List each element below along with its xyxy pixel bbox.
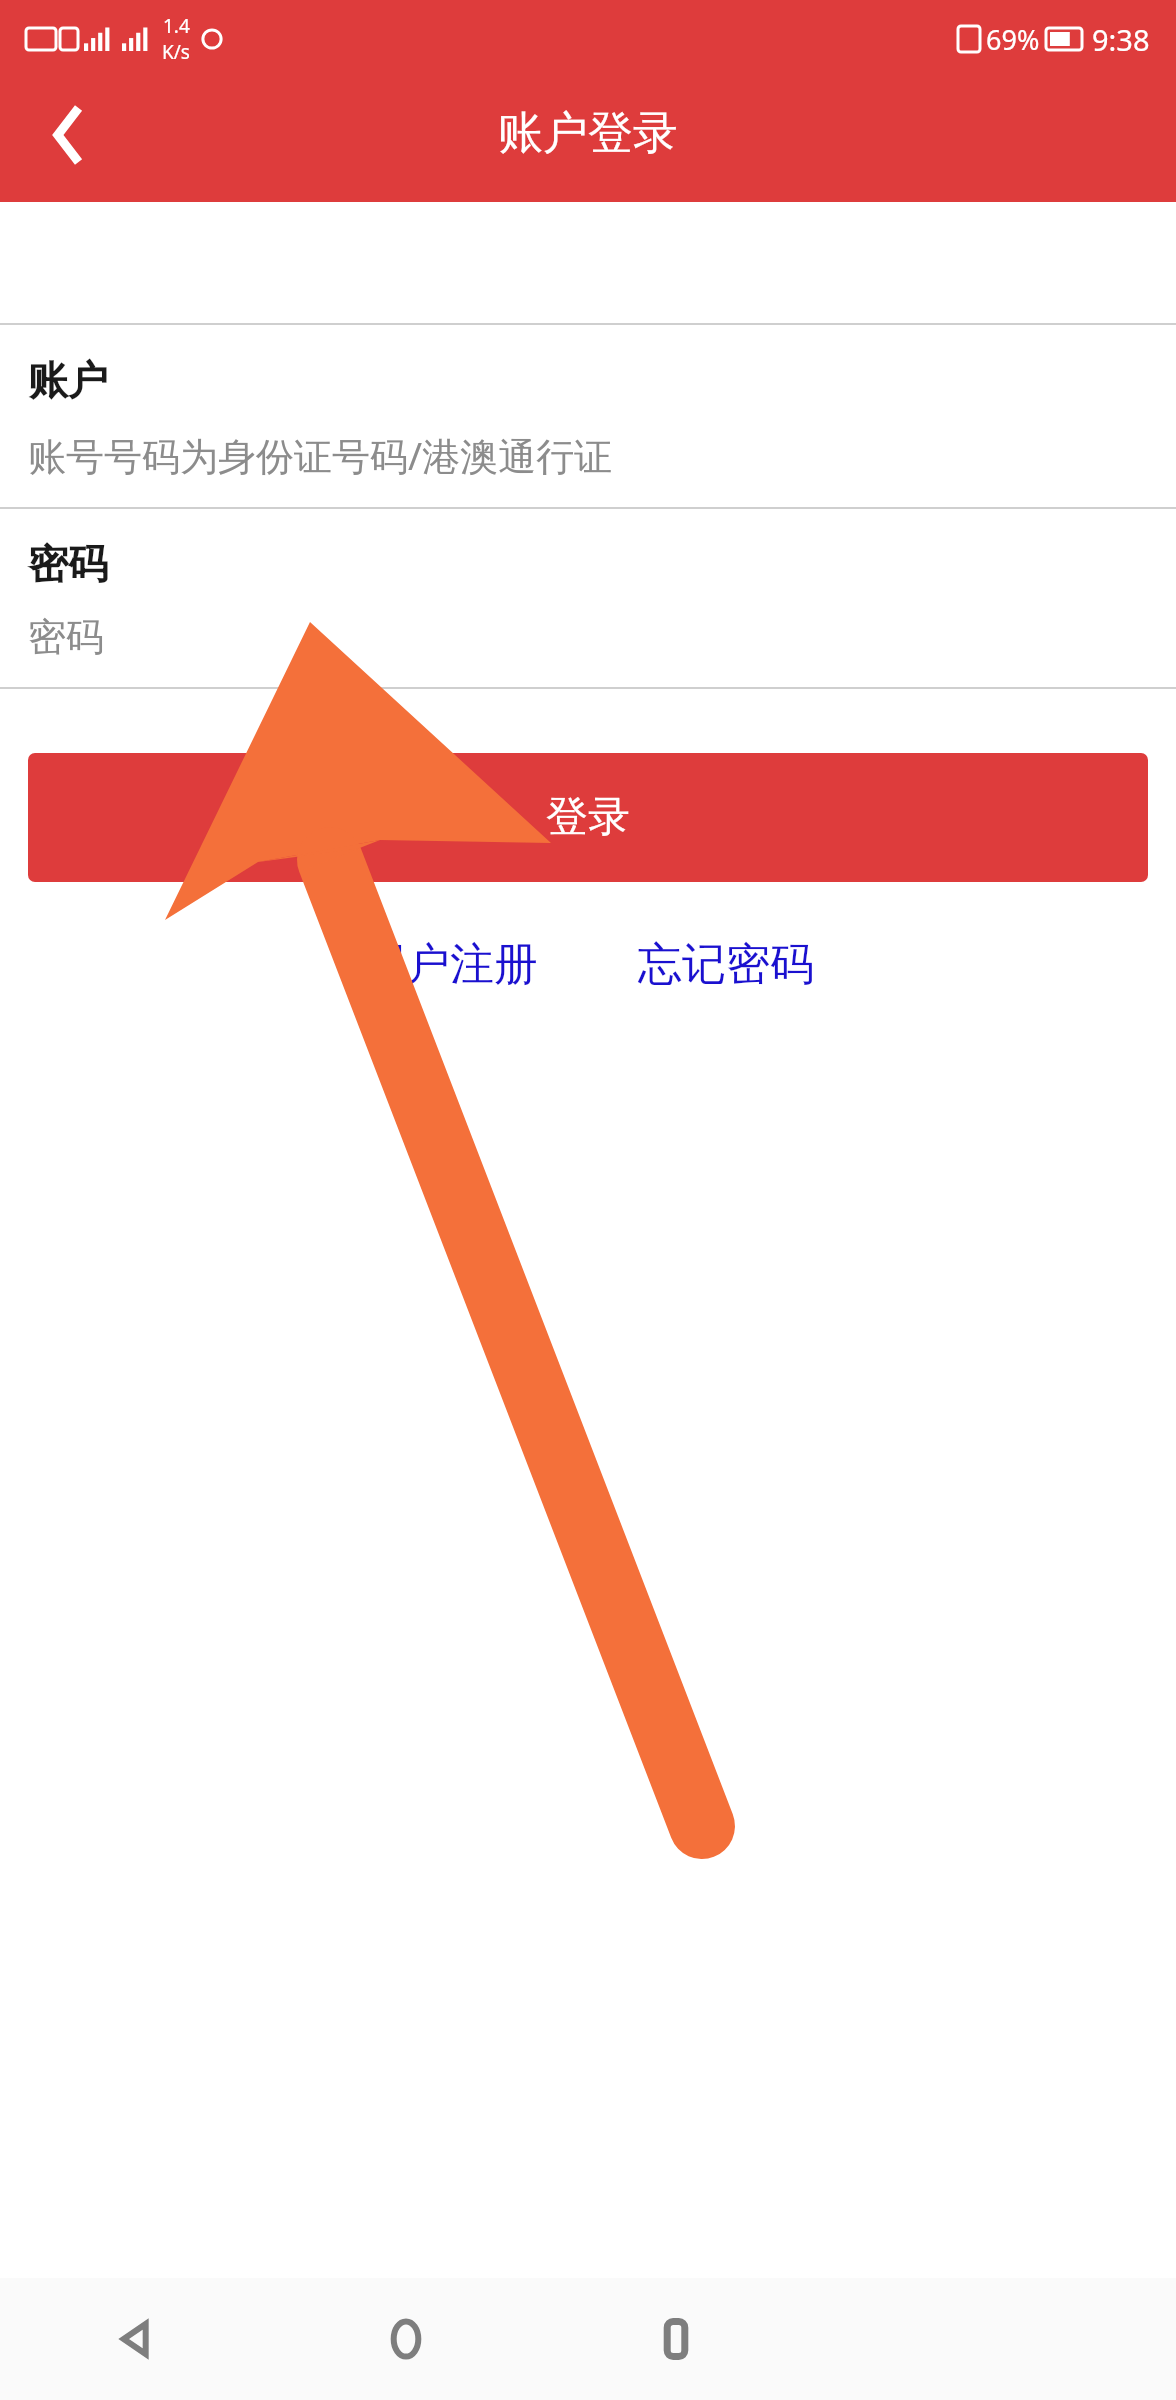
staticText: 账户登录	[498, 105, 678, 162]
button[interactable]: Recents	[541, 2278, 811, 2400]
button[interactable]: 用户注册	[356, 937, 544, 992]
button[interactable]: Home	[271, 2278, 541, 2400]
staticText: 69%	[986, 21, 1040, 58]
button[interactable]: Back	[0, 2278, 271, 2400]
staticText: 密码	[28, 613, 104, 661]
staticText: 登录	[546, 791, 630, 844]
button[interactable]: Back	[20, 90, 110, 180]
staticText: 密码	[28, 539, 108, 589]
button[interactable]: 登录	[28, 753, 1148, 882]
button[interactable]: 忘记密码	[632, 937, 820, 992]
staticText: 账号号码为身份证号码/港澳通行证	[28, 429, 613, 481]
staticText: 账户	[28, 355, 108, 405]
staticText: 1.4	[163, 13, 190, 39]
button[interactable]: 密码	[0, 509, 1176, 687]
button[interactable]: 账户	[0, 325, 1176, 507]
staticText: 9:38	[1092, 20, 1150, 59]
staticText: K/s	[162, 39, 190, 65]
